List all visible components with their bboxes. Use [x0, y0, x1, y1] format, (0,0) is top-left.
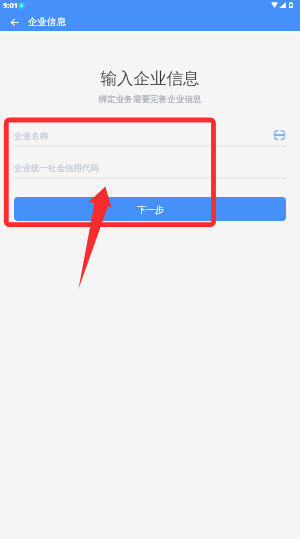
staticText: 企业信息 — [28, 16, 66, 28]
staticText: 下一步 — [137, 204, 164, 215]
staticText: 企业名称 — [14, 131, 48, 142]
button[interactable]: Back — [0, 13, 28, 31]
staticText: 输入企业信息 — [0, 68, 300, 89]
button[interactable]: 下一步 — [14, 197, 286, 221]
button[interactable]: 企业统一社会信用代码 — [14, 147, 286, 178]
staticText: 9:01 — [3, 0, 18, 10]
button[interactable]: 企业名称 — [14, 124, 272, 146]
staticText: 绑定业务需要完善企业信息 — [0, 94, 300, 105]
staticText: 企业统一社会信用代码 — [14, 163, 99, 174]
button[interactable]: Scan — [272, 128, 286, 142]
